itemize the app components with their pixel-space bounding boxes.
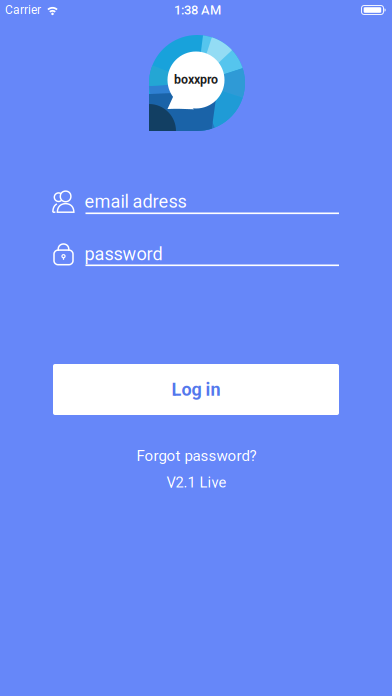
staticText: email adress [84,191,186,212]
staticText: Forgot password? [136,447,256,465]
button[interactable]: Log in [53,364,339,415]
staticText: V2.1 Live [166,474,226,491]
staticText: boxxpro [174,72,218,87]
staticText: Carrier [5,3,41,17]
button[interactable]: Forgot password? [136,447,256,465]
secureTextField[interactable]: password [52,240,339,268]
staticText: password [84,243,162,265]
staticText: 1:38 AM [174,2,221,18]
textField[interactable]: email adress [52,188,339,216]
staticText: Log in [171,379,220,400]
